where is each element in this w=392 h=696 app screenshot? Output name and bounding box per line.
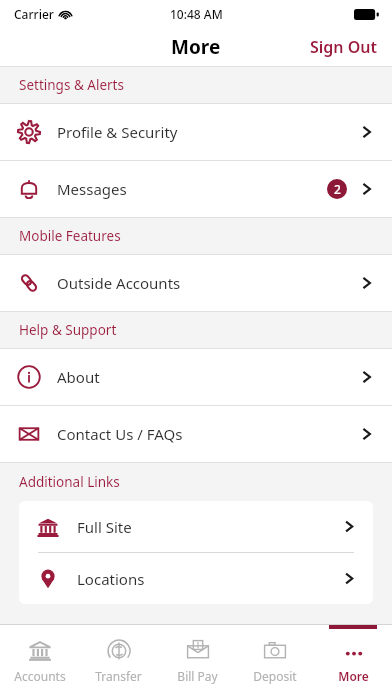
staticText: Bill Pay: [177, 668, 218, 684]
button[interactable]: Accounts: [0, 625, 79, 696]
staticText: 10:48 AM: [170, 6, 223, 22]
staticText: Sign Out: [310, 36, 378, 58]
button[interactable]: Outside Accounts: [0, 255, 392, 311]
button[interactable]: Deposit: [236, 625, 314, 696]
staticText: Profile & Security: [57, 122, 178, 142]
button[interactable]: Transfer: [79, 625, 158, 696]
other: Messages: [17, 177, 41, 201]
staticText: Full Site: [77, 517, 132, 537]
staticText: Accounts: [14, 668, 66, 684]
button[interactable]: Messages: [0, 161, 392, 217]
other: Full Site: [37, 516, 59, 538]
button[interactable]: About: [0, 349, 392, 405]
other: Settings: [17, 120, 41, 144]
button[interactable]: Full Site: [19, 501, 373, 552]
staticText: Deposit: [253, 668, 297, 684]
button[interactable]: Settings: [0, 104, 392, 160]
other: Contact Us: [17, 422, 41, 446]
staticText: Contact Us / FAQs: [57, 424, 183, 444]
other: Outside Accounts: [17, 271, 41, 295]
staticText: Mobile Features: [19, 227, 121, 245]
button[interactable]: Locations: [19, 553, 373, 604]
button[interactable]: More: [314, 625, 392, 696]
staticText: Carrier: [14, 6, 54, 22]
staticText: Help & Support: [19, 321, 117, 339]
staticText: About: [57, 367, 100, 387]
button[interactable]: Bill Pay: [158, 625, 236, 696]
staticText: 2: [334, 181, 341, 197]
staticText: Messages: [57, 179, 127, 199]
other: Locations: [37, 568, 59, 590]
button[interactable]: Contact Us: [0, 406, 392, 462]
staticText: Outside Accounts: [57, 273, 181, 293]
staticText: Transfer: [95, 668, 142, 684]
staticText: Additional Links: [19, 473, 120, 491]
button[interactable]: Sign Out: [296, 30, 392, 64]
staticText: Locations: [77, 569, 145, 589]
staticText: More: [171, 34, 221, 60]
staticText: More: [338, 668, 369, 684]
other: About: [17, 365, 41, 389]
staticText: Settings & Alerts: [19, 76, 124, 94]
